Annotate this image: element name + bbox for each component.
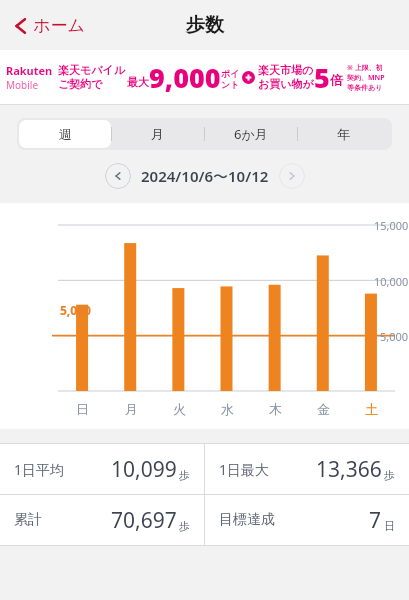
button[interactable]: 年 [297,120,390,148]
button[interactable]: ホーム [8,11,91,40]
staticText: 日 [384,519,395,533]
staticText: 70,697 [111,506,177,535]
staticText: 10,099 [111,455,177,484]
staticText: 火 [173,401,186,417]
staticText: 15,000 [374,218,409,233]
staticText: Rakuten [6,63,53,78]
staticText: 13,366 [316,455,382,484]
button[interactable]: Rakuten [0,50,409,104]
button[interactable]: 週 [19,120,111,148]
staticText: 最大 [127,75,149,89]
button[interactable]: 月 [111,120,204,148]
staticText: 水 [221,401,234,417]
button[interactable]: 累計 [0,495,204,545]
button[interactable]: Next week [279,163,305,189]
button[interactable]: Previous week [105,163,131,189]
staticText: 木 [269,401,282,417]
button[interactable]: 目標達成 [205,495,409,545]
staticText: 1日最大 [219,460,270,479]
staticText: Mobile [6,78,39,92]
staticText: 歩 [179,468,190,482]
staticText: 週 [59,126,72,142]
staticText: 倍 [330,72,343,88]
staticText: 年 [337,126,350,142]
staticText: 5,000 [380,329,409,344]
staticText: 7 [369,506,382,535]
staticText: 契約、MNP [347,73,385,83]
staticText: ホーム [33,15,85,36]
staticText: 10,000 [374,274,409,289]
staticText: お買い物が [258,77,314,91]
staticText: 2024/10/6〜10/12 [141,166,269,186]
staticText: 月 [125,401,138,417]
staticText: 金 [317,401,330,417]
staticText: 1日平均 [14,460,65,479]
staticText: 土 [365,401,378,417]
staticText: 歩 [179,519,190,533]
staticText: 9,000 [149,59,221,96]
button[interactable]: 6か月 [204,120,297,148]
staticText: ※ 上限、初 [347,63,383,73]
staticText: 歩 [384,468,395,482]
staticText: 楽天市場の [258,63,314,77]
staticText: 日 [76,401,89,417]
staticText: 累計 [14,511,42,529]
staticText: 6か月 [234,125,268,143]
button[interactable]: 1日平均 [0,444,204,494]
staticText: 目標達成 [219,511,275,529]
staticText: 楽天モバイル [58,63,126,77]
staticText: ご契約で [58,77,103,91]
button[interactable]: 1日最大 [205,444,409,494]
staticText: ポイ [221,68,240,79]
staticText: 5 [314,59,330,96]
staticText: ント [221,79,240,90]
staticText: 月 [151,126,164,142]
staticText: 歩数 [186,13,224,37]
staticText: 5,000 [60,302,91,318]
staticText: 等条件あり [347,83,383,92]
